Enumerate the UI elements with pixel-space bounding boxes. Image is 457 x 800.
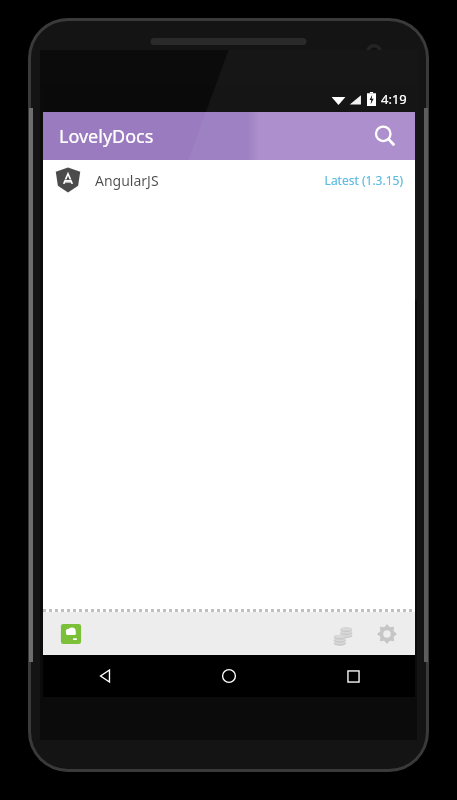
staticText: AngularJS: [95, 171, 159, 190]
staticText: 4:19: [381, 90, 407, 108]
staticText: LovelyDocs: [59, 124, 154, 149]
staticText: Latest (1.3.15): [324, 172, 403, 188]
button[interactable]: Settings: [367, 614, 407, 654]
button[interactable]: AngularJS: [43, 160, 415, 200]
button[interactable]: Search: [365, 116, 405, 156]
button[interactable]: Back: [43, 655, 167, 697]
button[interactable]: Recent apps: [291, 655, 415, 697]
button[interactable]: Purchases: [323, 614, 363, 654]
button[interactable]: Home: [167, 655, 291, 697]
button[interactable]: Local storage: [53, 616, 89, 652]
